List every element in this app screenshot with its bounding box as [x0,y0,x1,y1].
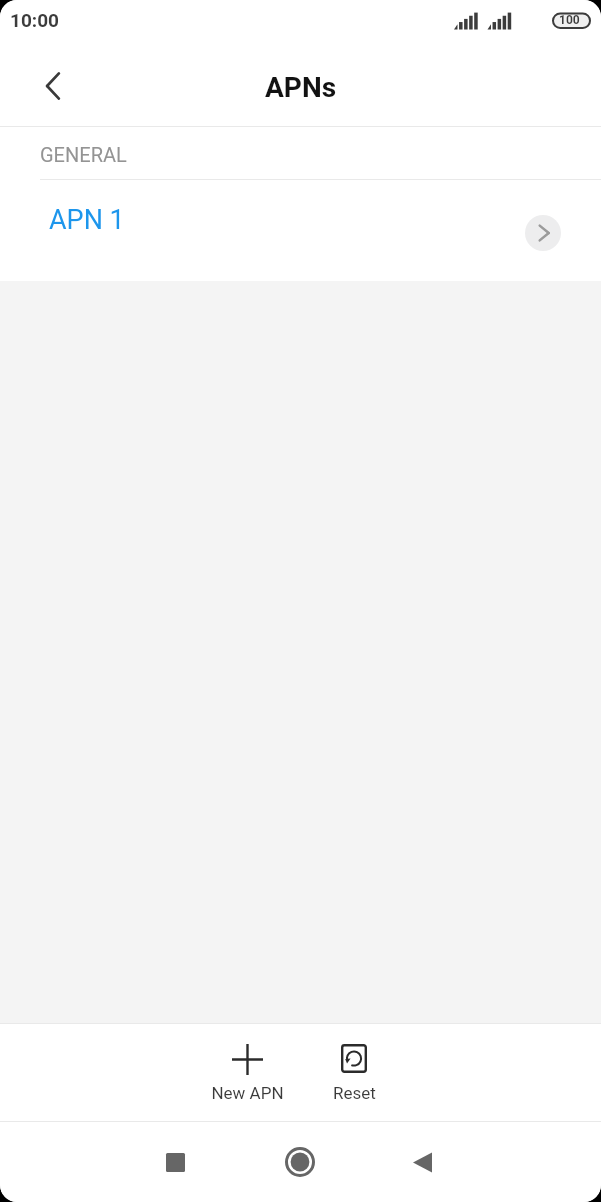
staticText: GENERAL [40,143,127,166]
button[interactable]: Home [270,1132,330,1192]
button[interactable]: Back [28,63,74,109]
staticText: APNs [265,71,337,104]
button[interactable]: Back [392,1132,452,1192]
staticText: New APN [211,1083,284,1103]
button[interactable]: APN 1 [0,180,601,281]
button[interactable]: Recent apps [145,1132,205,1192]
staticText: Reset [333,1083,376,1103]
staticText: APN 1 [49,204,125,236]
button[interactable]: Reset [294,1024,414,1121]
button[interactable]: New APN [187,1024,307,1121]
staticText: 100 [559,13,580,27]
staticText: 10:00 [10,9,59,31]
